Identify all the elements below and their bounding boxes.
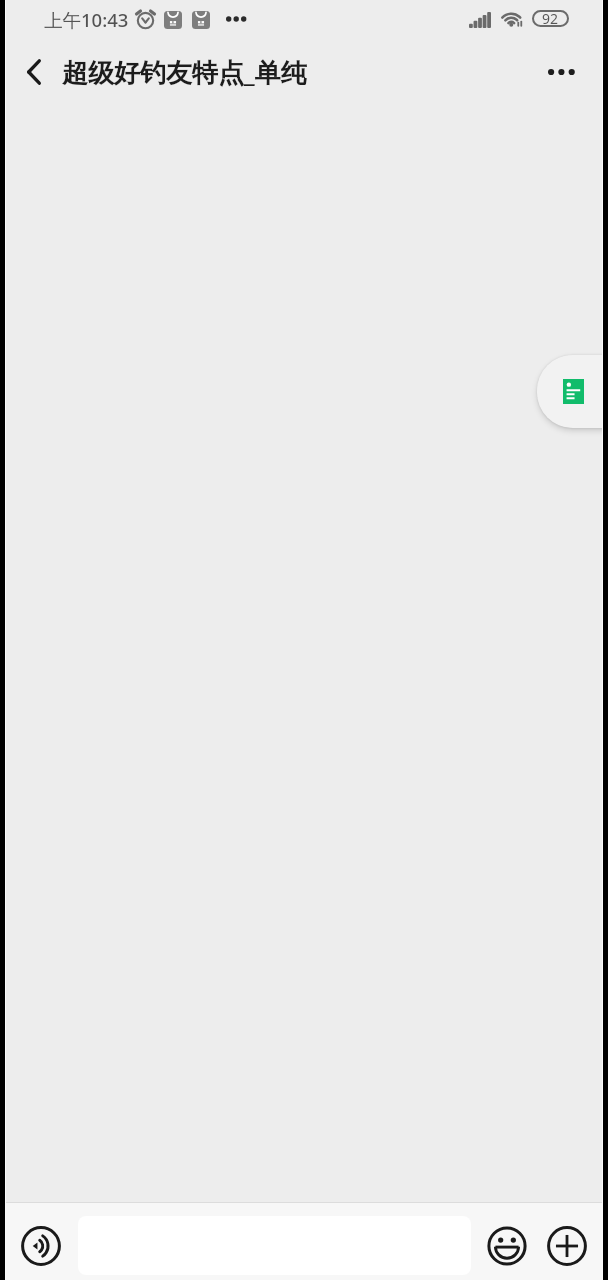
button[interactable]: Back — [0, 45, 58, 105]
button[interactable]: More — [547, 1226, 587, 1266]
button[interactable]: Group notice — [537, 355, 608, 428]
staticText: 上午10:43 — [44, 7, 129, 32]
button[interactable]: More options — [546, 45, 608, 105]
button[interactable]: Emoji — [487, 1226, 527, 1266]
staticText: 超级好钓友特点_单纯 — [62, 54, 307, 90]
button[interactable]: Voice input — [21, 1226, 61, 1266]
staticText: 92 — [542, 9, 559, 26]
